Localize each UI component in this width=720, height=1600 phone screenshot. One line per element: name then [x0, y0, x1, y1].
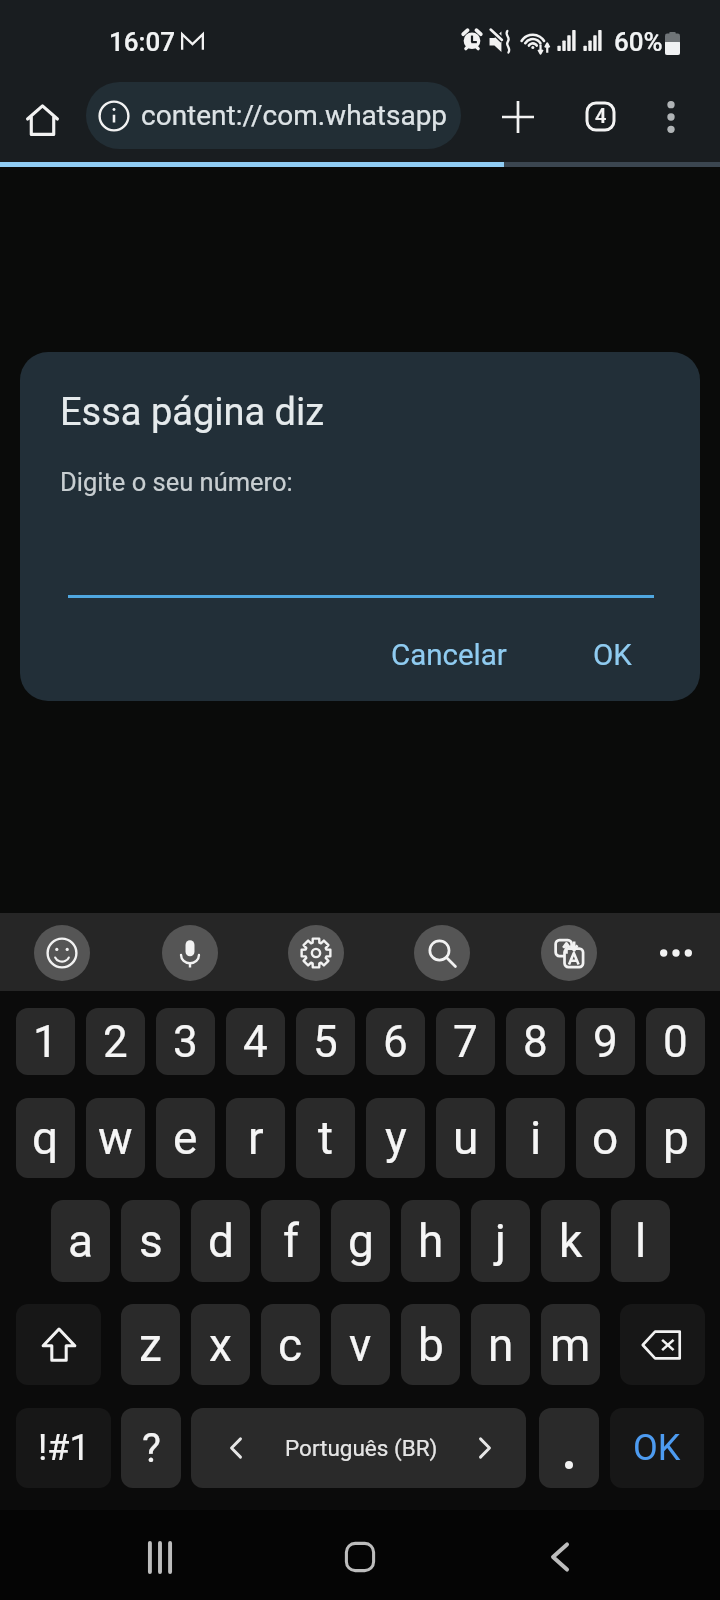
staticText: w	[98, 1111, 133, 1165]
staticText: e	[173, 1111, 198, 1165]
staticText: q	[32, 1111, 59, 1165]
button[interactable]: y	[366, 1098, 425, 1178]
button[interactable]: c	[261, 1304, 320, 1385]
button[interactable]: 0	[646, 1008, 705, 1075]
button[interactable]: Search	[414, 925, 470, 981]
button[interactable]: Cancelar	[371, 627, 527, 684]
button[interactable]: n	[471, 1304, 530, 1385]
button[interactable]: g	[331, 1200, 390, 1282]
button[interactable]: j	[471, 1200, 530, 1282]
button[interactable]: Symbols	[16, 1408, 111, 1488]
staticText: 8	[523, 1016, 548, 1068]
staticText: r	[248, 1111, 264, 1165]
staticText: Digite o seu número:	[60, 467, 293, 497]
staticText: 0	[663, 1016, 688, 1068]
button[interactable]: 2	[86, 1008, 145, 1075]
staticText: o	[592, 1111, 619, 1165]
button[interactable]: OK	[610, 1408, 704, 1488]
button[interactable]: d	[191, 1200, 250, 1282]
button[interactable]: 7	[436, 1008, 495, 1075]
staticText: 7	[453, 1016, 478, 1068]
staticText: !#1	[38, 1427, 90, 1469]
button[interactable]: Keyboard settings	[288, 925, 344, 981]
button[interactable]: 5	[296, 1008, 355, 1075]
button[interactable]: k	[541, 1200, 600, 1282]
button[interactable]: x	[191, 1304, 250, 1385]
button[interactable]: Space, Português (BR)	[191, 1408, 526, 1488]
staticText: d	[208, 1214, 234, 1268]
staticText: 60%	[614, 27, 663, 57]
staticText: 5	[313, 1016, 338, 1068]
button[interactable]: 9	[576, 1008, 635, 1075]
button[interactable]: Tabs, 4 open	[568, 84, 632, 148]
staticText: p	[663, 1111, 689, 1165]
button[interactable]: OK	[573, 627, 652, 684]
button[interactable]: o	[576, 1098, 635, 1178]
button[interactable]: 3	[156, 1008, 215, 1075]
button[interactable]: l	[611, 1200, 670, 1282]
button[interactable]: e	[156, 1098, 215, 1178]
button[interactable]: 8	[506, 1008, 565, 1075]
staticText: m	[550, 1318, 591, 1372]
button[interactable]: Recent apps	[125, 1522, 195, 1592]
button[interactable]: More options	[639, 85, 703, 149]
button[interactable]: q	[16, 1098, 75, 1178]
button[interactable]: Back	[525, 1522, 595, 1592]
button[interactable]: Translate	[541, 925, 597, 981]
staticText: 6	[383, 1016, 408, 1068]
button[interactable]: i	[506, 1098, 565, 1178]
staticText: a	[68, 1214, 94, 1268]
staticText: h	[418, 1214, 444, 1268]
staticText: Cancelar	[391, 638, 507, 673]
staticText: 2	[103, 1016, 128, 1068]
staticText: content://com.whatsapp	[141, 99, 448, 132]
button[interactable]: Backspace	[620, 1304, 705, 1385]
button[interactable]: 6	[366, 1008, 425, 1075]
button[interactable]: r	[226, 1098, 285, 1178]
button[interactable]: w	[86, 1098, 145, 1178]
staticText: n	[488, 1318, 514, 1372]
staticText: v	[349, 1318, 372, 1372]
button[interactable]: More keyboard options	[648, 925, 704, 981]
staticText: u	[453, 1111, 479, 1165]
staticText: x	[209, 1318, 232, 1372]
staticText: 3	[173, 1016, 198, 1068]
button[interactable]: v	[331, 1304, 390, 1385]
button[interactable]: 4	[226, 1008, 285, 1075]
button[interactable]: Voice input	[162, 925, 218, 981]
staticText: s	[139, 1214, 163, 1268]
button[interactable]: z	[121, 1304, 180, 1385]
button[interactable]: a	[51, 1200, 110, 1282]
button[interactable]: s	[121, 1200, 180, 1282]
button[interactable]: 1	[16, 1008, 75, 1075]
staticText: g	[348, 1214, 374, 1268]
button[interactable]: t	[296, 1098, 355, 1178]
button[interactable]: b	[401, 1304, 460, 1385]
staticText: z	[139, 1318, 162, 1372]
staticText: 9	[593, 1016, 618, 1068]
button[interactable]: Shift	[16, 1304, 101, 1385]
staticText: OK	[593, 638, 632, 673]
button[interactable]: ?	[121, 1408, 181, 1488]
staticText: l	[635, 1214, 647, 1268]
staticText: j	[495, 1214, 507, 1268]
button[interactable]: u	[436, 1098, 495, 1178]
button[interactable]: Emoji	[34, 925, 90, 981]
staticText: 4	[243, 1016, 268, 1068]
button[interactable]: f	[261, 1200, 320, 1282]
button[interactable]: Period	[539, 1408, 599, 1488]
button[interactable]: h	[401, 1200, 460, 1282]
staticText: 1	[33, 1016, 58, 1068]
staticText: y	[385, 1111, 407, 1165]
button[interactable]: p	[646, 1098, 705, 1178]
button[interactable]: Home	[325, 1522, 395, 1592]
button[interactable]: m	[541, 1304, 600, 1385]
button[interactable]: Home	[10, 88, 74, 152]
staticText: OK	[633, 1427, 681, 1469]
button[interactable]: content://com.whatsapp	[86, 82, 461, 149]
staticText: 4	[595, 104, 607, 127]
staticText: f	[283, 1214, 299, 1268]
staticText: b	[418, 1318, 444, 1372]
staticText: i	[530, 1111, 542, 1165]
button[interactable]: New tab	[486, 85, 550, 149]
